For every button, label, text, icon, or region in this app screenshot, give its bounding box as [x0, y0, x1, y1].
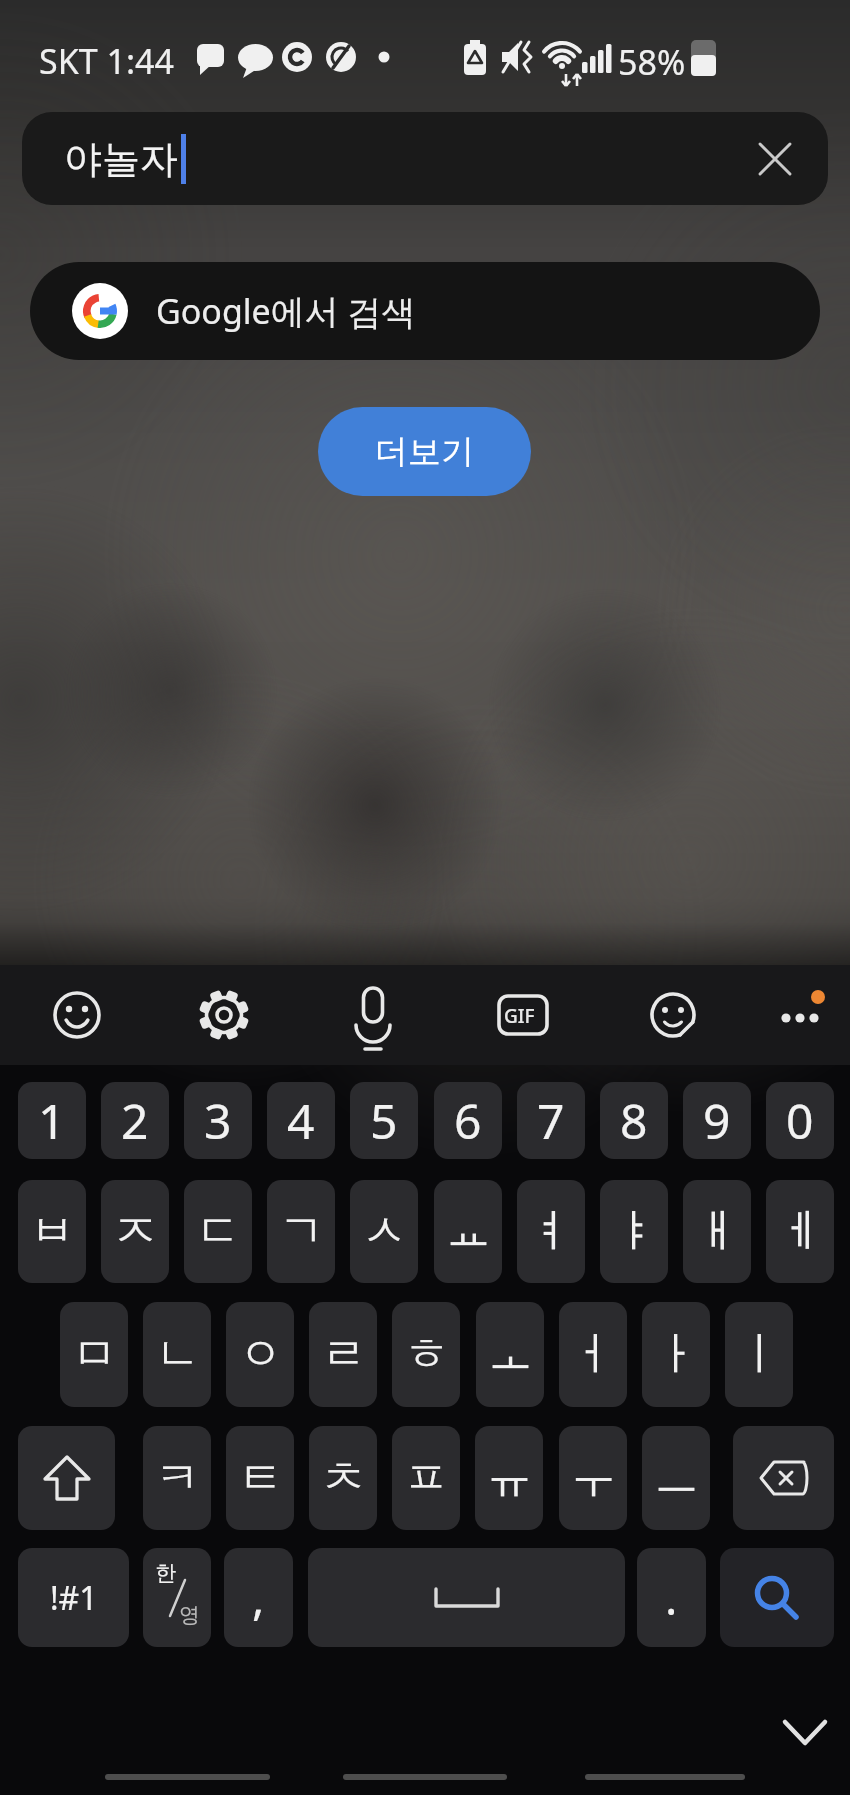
staticText: 야놀자	[64, 135, 178, 183]
button[interactable]	[308, 1548, 625, 1647]
staticText: ㄷ	[196, 1203, 241, 1260]
staticText: 58%	[618, 39, 686, 85]
staticText: ㅅ	[362, 1203, 407, 1260]
staticText: ㅋ	[155, 1450, 200, 1507]
staticText: ㅓ	[571, 1326, 616, 1383]
staticText: ㅈ	[113, 1203, 158, 1260]
staticText: ㄹ	[321, 1326, 366, 1383]
button[interactable]: .	[637, 1548, 706, 1647]
staticText: 8	[620, 1088, 648, 1153]
button[interactable]	[337, 973, 409, 1057]
button[interactable]	[720, 1548, 834, 1647]
button[interactable]: 8	[600, 1082, 668, 1159]
button[interactable]: 7	[517, 1082, 585, 1159]
staticText: ㅔ	[778, 1203, 823, 1260]
staticText: 더보기	[375, 431, 474, 473]
button[interactable]	[764, 973, 836, 1057]
button[interactable]: ㅕ	[517, 1180, 585, 1283]
staticText: ㅛ	[446, 1203, 491, 1260]
button[interactable]: 2	[101, 1082, 169, 1159]
staticText: 6	[454, 1088, 482, 1153]
button[interactable]: ㅑ	[600, 1180, 668, 1283]
staticText: ㅡ	[654, 1450, 699, 1507]
staticText: ㅗ	[488, 1326, 533, 1383]
button[interactable]: ㄷ	[184, 1180, 252, 1283]
staticText: 1	[38, 1088, 66, 1153]
staticText: Google에서 검색	[156, 288, 416, 334]
staticText: SKT 1:44	[39, 38, 174, 84]
button[interactable]	[18, 1426, 115, 1530]
button[interactable]: ㅎ	[392, 1302, 460, 1407]
button[interactable]: ㅔ	[766, 1180, 834, 1283]
staticText: ㅕ	[529, 1203, 574, 1260]
button[interactable]: 3	[184, 1082, 252, 1159]
button[interactable]: 0	[766, 1082, 834, 1159]
staticText: ㅌ	[238, 1450, 283, 1507]
button[interactable]: ㅈ	[101, 1180, 169, 1283]
button[interactable]: ㅍ	[392, 1426, 460, 1530]
button[interactable]: ㄹ	[309, 1302, 377, 1407]
staticText: ㅎ	[404, 1326, 449, 1383]
button[interactable]: ㅏ	[642, 1302, 710, 1407]
staticText: 0	[786, 1088, 814, 1153]
button[interactable]: 6	[434, 1082, 502, 1159]
button[interactable]: ,	[224, 1548, 293, 1647]
staticText: 9	[703, 1088, 731, 1153]
button[interactable]: !#1	[18, 1548, 129, 1647]
button[interactable]: ㅌ	[226, 1426, 294, 1530]
staticText: ㅁ	[72, 1326, 117, 1383]
button[interactable]: ㅜ	[559, 1426, 627, 1530]
staticText: ㅐ	[695, 1203, 740, 1260]
staticText: 2	[121, 1088, 149, 1153]
button[interactable]: 1	[18, 1082, 86, 1159]
button[interactable]	[487, 973, 559, 1057]
button[interactable]: ㅠ	[475, 1426, 543, 1530]
button[interactable]: 5	[350, 1082, 418, 1159]
staticText: 7	[537, 1088, 565, 1153]
button[interactable]: ㅛ	[434, 1180, 502, 1283]
button[interactable]: ㅣ	[725, 1302, 793, 1407]
button[interactable]: ㅗ	[476, 1302, 544, 1407]
staticText: 4	[287, 1088, 315, 1153]
button[interactable]: ㅓ	[559, 1302, 627, 1407]
button[interactable]: ㅇ	[226, 1302, 294, 1407]
staticText: ㅑ	[612, 1203, 657, 1260]
staticText: ,	[252, 1566, 265, 1629]
button[interactable]: 한	[143, 1548, 211, 1647]
staticText: 5	[370, 1088, 398, 1153]
button[interactable]: ㅡ	[642, 1426, 710, 1530]
button[interactable]: ㅊ	[309, 1426, 377, 1530]
staticText: 한	[155, 1560, 176, 1586]
staticText: ㅠ	[487, 1450, 532, 1507]
button[interactable]: 9	[683, 1082, 751, 1159]
staticText: ㅂ	[30, 1203, 75, 1260]
staticText: ㅏ	[654, 1326, 699, 1383]
button[interactable]: ㅋ	[143, 1426, 211, 1530]
button[interactable]: ㄱ	[267, 1180, 335, 1283]
staticText: .	[665, 1566, 678, 1629]
button[interactable]	[188, 973, 260, 1057]
button[interactable]: ㅁ	[60, 1302, 128, 1407]
staticText: ㅍ	[404, 1450, 449, 1507]
staticText: GIF	[504, 1003, 535, 1029]
staticText: ㅜ	[571, 1450, 616, 1507]
button[interactable]	[41, 973, 113, 1057]
button[interactable]: ㅐ	[683, 1180, 751, 1283]
staticText: ㅣ	[737, 1326, 782, 1383]
button[interactable]: ㅅ	[350, 1180, 418, 1283]
button[interactable]: 야놀자	[22, 112, 828, 205]
button[interactable]	[776, 1706, 834, 1760]
staticText: ㄱ	[279, 1203, 324, 1260]
staticText: 3	[204, 1088, 232, 1153]
button[interactable]: Google에서 검색	[30, 262, 820, 360]
button[interactable]	[733, 1426, 834, 1530]
button[interactable]	[637, 973, 709, 1057]
button[interactable]: 4	[267, 1082, 335, 1159]
staticText: ㅇ	[238, 1326, 283, 1383]
button[interactable]: ㅂ	[18, 1180, 86, 1283]
staticText: ㅊ	[321, 1450, 366, 1507]
button[interactable]: 더보기	[318, 407, 531, 496]
button[interactable]: ㄴ	[143, 1302, 211, 1407]
staticText: ㄴ	[155, 1326, 200, 1383]
staticText: !#1	[50, 1576, 98, 1620]
